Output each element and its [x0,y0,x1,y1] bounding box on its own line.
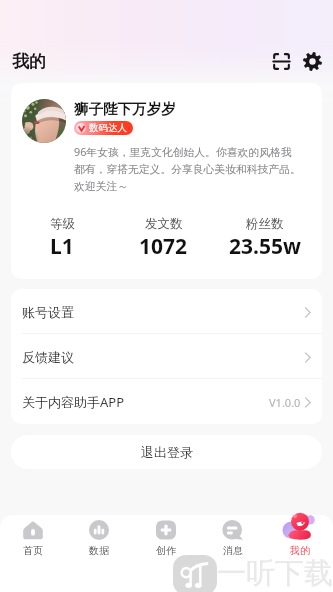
staticText: 一听下载 [217,555,333,592]
button[interactable]: 退出登录 [11,435,322,469]
staticText: V1.0.0 [269,395,301,410]
staticText: 粉丝数 [246,216,284,232]
staticText: L1 [50,232,74,261]
button[interactable]: 消息 [199,515,266,592]
staticText: 账号设置 [22,304,74,320]
button[interactable]: 我的 [266,515,333,592]
button[interactable]: 数据 [66,515,132,592]
staticText: 我的 [12,51,46,72]
button[interactable]: 反馈建议 [11,334,322,379]
staticText: 等级 [50,216,75,232]
button[interactable]: 账号设置 [11,289,322,334]
button[interactable]: 数码达人 [74,121,133,135]
button[interactable]: 关于内容助手APP [11,379,322,424]
button[interactable]: Avatar [22,99,66,143]
staticText: 数据 [89,544,109,557]
staticText: 数码达人 [89,122,127,134]
staticText: 退出登录 [141,444,193,460]
button[interactable]: 首页 [0,515,66,592]
staticText: 1072 [139,232,188,261]
staticText: 首页 [23,544,43,557]
staticText: 关于内容助手APP [22,393,125,411]
staticText: 反馈建议 [22,349,74,365]
staticText: 23.55w [229,232,301,261]
button[interactable]: 创作 [132,515,199,592]
staticText: 狮子陛下万岁岁 [74,100,176,118]
staticText: 我的 [290,544,310,557]
staticText: 发文数 [145,216,183,232]
staticText: 消息 [223,544,243,557]
staticText: 96年女孩，里克文化创始人。你喜欢的风格我都有，穿搭无定义。分享良心美妆和科技产… [74,144,302,193]
staticText: 创作 [156,544,176,557]
button[interactable]: Settings [298,47,326,75]
button[interactable]: Scan [265,45,297,77]
